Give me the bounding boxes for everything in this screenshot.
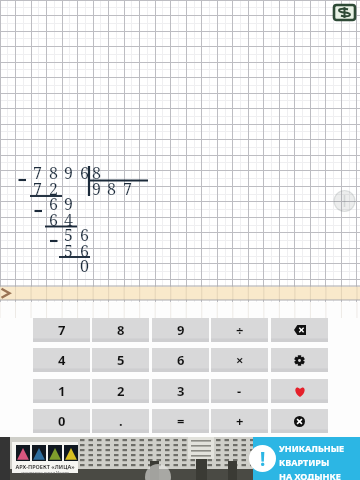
staticText: !	[260, 446, 266, 472]
other: Clear	[294, 416, 305, 427]
button[interactable]: 3	[152, 379, 209, 403]
button[interactable]: 2	[92, 379, 149, 403]
staticText: 4	[58, 351, 66, 369]
staticText: 3	[177, 382, 185, 400]
staticText: .	[119, 412, 123, 430]
staticText: 9	[92, 178, 101, 200]
button[interactable]: -	[211, 379, 268, 403]
button[interactable]: Settings	[271, 348, 328, 372]
staticText: 2	[49, 178, 58, 200]
staticText: 5	[64, 240, 73, 262]
staticText: 9	[64, 162, 73, 184]
button[interactable]: =	[152, 409, 209, 433]
staticText: +	[236, 412, 244, 430]
other: Favorite	[294, 386, 306, 397]
staticText: 2	[117, 382, 125, 400]
button[interactable]: ÷	[211, 318, 268, 342]
staticText: УНИКАЛЬНЫЕ	[279, 442, 344, 454]
button[interactable]: УНИКАЛЬНЫЕ	[0, 437, 360, 480]
staticText: 5	[117, 351, 125, 369]
other: Settings	[294, 355, 305, 366]
button[interactable]: Remove ads	[334, 5, 355, 20]
staticText: 7	[58, 321, 66, 339]
staticText: 7	[33, 162, 42, 184]
staticText: 8	[117, 321, 125, 339]
staticText: 6	[49, 193, 58, 215]
button[interactable]: +	[211, 409, 268, 433]
staticText: 0	[58, 412, 66, 430]
staticText: 6	[80, 162, 89, 184]
button[interactable]: ×	[211, 348, 268, 372]
button[interactable]: Clear	[271, 409, 328, 433]
button[interactable]: Backspace	[271, 318, 328, 342]
button[interactable]: 5	[92, 348, 149, 372]
staticText: 6	[49, 209, 58, 231]
staticText: 8	[49, 162, 58, 184]
staticText: -	[237, 382, 242, 400]
staticText: КВАРТИРЫ	[279, 456, 330, 468]
staticText: 5	[64, 224, 73, 246]
staticText: 9	[177, 321, 185, 339]
staticText: 7	[33, 178, 42, 200]
staticText: 6	[80, 240, 89, 262]
staticText: 1	[58, 382, 66, 400]
staticText: 8	[92, 162, 101, 184]
staticText: АРХ-ПРОЕКТ «ЛИЦА»	[12, 463, 78, 470]
staticText: 6	[80, 224, 89, 246]
button[interactable]: .	[92, 409, 149, 433]
staticText: 0	[80, 255, 89, 277]
staticText: 9	[64, 193, 73, 215]
button[interactable]: 4	[33, 348, 90, 372]
staticText: ÷	[236, 321, 244, 339]
staticText: 4	[64, 209, 73, 231]
button[interactable]: 9	[152, 318, 209, 342]
button[interactable]: 1	[33, 379, 90, 403]
staticText: =	[177, 412, 185, 430]
staticText: ×	[236, 351, 244, 369]
button[interactable]: 7	[33, 318, 90, 342]
button[interactable]: 0	[33, 409, 90, 433]
staticText: 8	[107, 178, 116, 200]
staticText: НА ХОДЫНКЕ	[279, 470, 341, 480]
staticText: строительно дома в Москве	[12, 470, 78, 475]
staticText: 6	[177, 351, 185, 369]
button[interactable]: Favorite	[271, 379, 328, 403]
staticText: 7	[123, 178, 132, 200]
button[interactable]: 6	[152, 348, 209, 372]
button[interactable]: 8	[92, 318, 149, 342]
other: Backspace	[294, 325, 306, 335]
